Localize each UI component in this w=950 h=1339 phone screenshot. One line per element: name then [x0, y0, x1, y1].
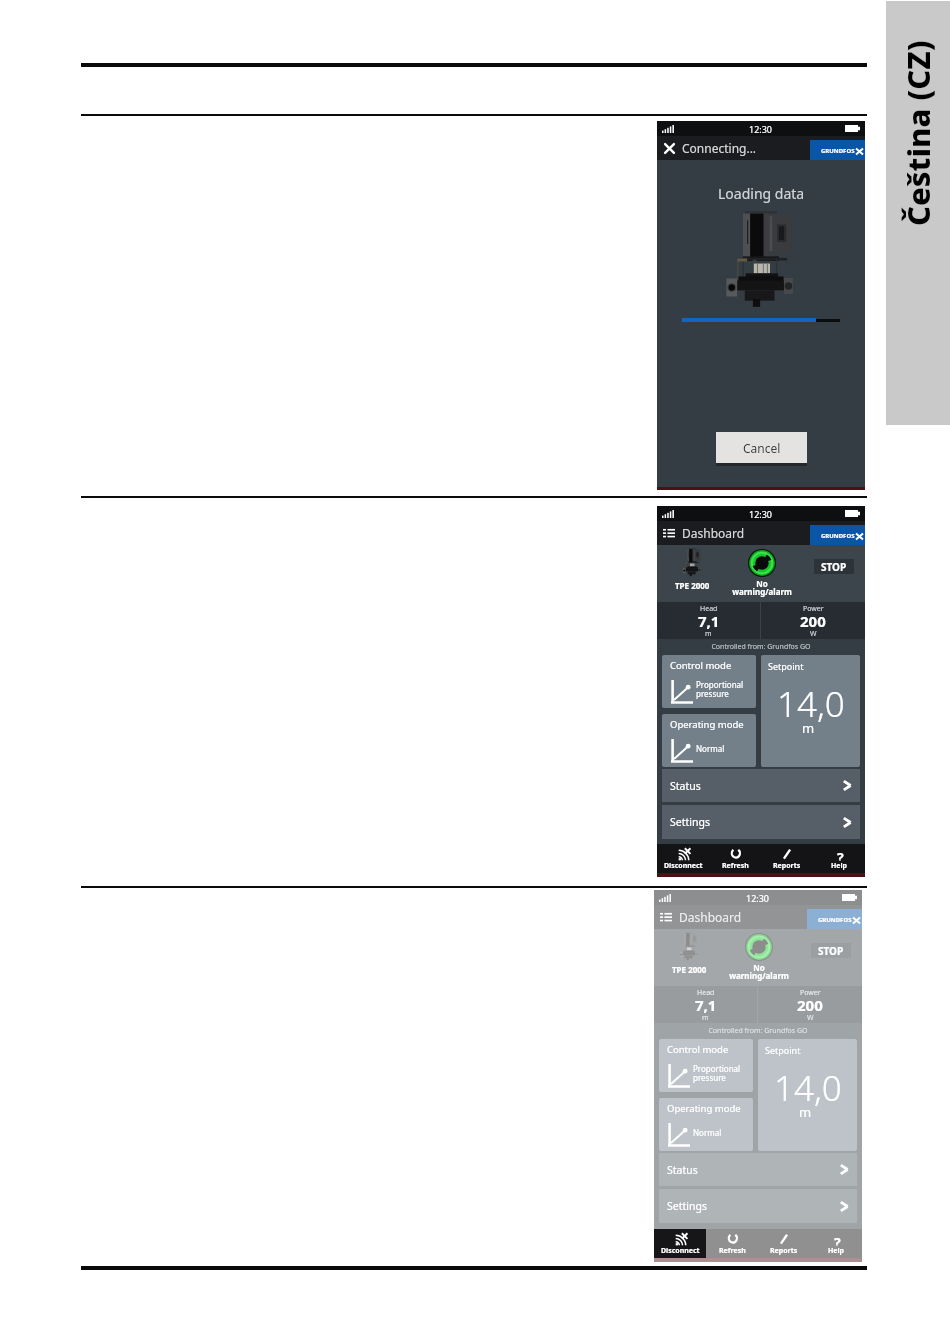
staticText: Reports [770, 1246, 798, 1256]
button[interactable]: Setpoint [758, 1039, 857, 1151]
button[interactable]: Close [657, 136, 865, 160]
staticText: Disconnect [661, 1246, 700, 1256]
button[interactable]: Menu [657, 521, 865, 545]
staticText: Refresh [719, 1246, 746, 1256]
other: Open Status [840, 1164, 848, 1175]
button[interactable]: Disconnect [654, 1229, 706, 1258]
other: Close [664, 143, 675, 154]
staticText: Connecting... [682, 140, 757, 156]
button[interactable]: Menu [654, 905, 862, 929]
staticText: Čeština (CZ) [897, 40, 939, 226]
staticText: 7,1 [695, 995, 717, 1015]
staticText: 200 [797, 995, 823, 1015]
staticText: Help [831, 861, 848, 871]
staticText: Power [800, 988, 821, 998]
staticText: Control mode [670, 659, 732, 672]
other: Menu [660, 911, 672, 923]
staticText: No warning/alarm [729, 962, 789, 981]
staticText: Status [670, 779, 701, 793]
button[interactable]: ? [810, 1229, 862, 1258]
staticText: No warning/alarm [732, 578, 792, 597]
staticText: STOP [818, 944, 844, 958]
button[interactable]: TPE 2000 [657, 545, 727, 602]
button[interactable]: Disconnect [654, 1229, 706, 1258]
staticText: 14,0 [774, 1064, 842, 1112]
staticText: Head [700, 604, 718, 614]
staticText: 14,0 [777, 680, 845, 728]
staticText: 12:30 [746, 892, 770, 904]
staticText: GRUNDFOS [821, 147, 855, 155]
button[interactable]: ? [813, 844, 865, 873]
staticText: Proportional pressure [693, 1063, 741, 1084]
staticText: Operating mode [670, 718, 744, 731]
button[interactable]: Cancel [716, 432, 807, 463]
button[interactable]: Disconnect [657, 844, 709, 873]
staticText: Reports [773, 861, 801, 871]
button[interactable]: Power [761, 602, 865, 639]
staticText: m [705, 629, 712, 639]
staticText: 7,1 [698, 611, 720, 631]
staticText: Status [667, 1163, 698, 1177]
staticText: Setpoint [768, 660, 804, 672]
button[interactable]: Control mode [659, 1039, 753, 1092]
button[interactable]: Settings [662, 805, 860, 839]
button[interactable]: Head [657, 602, 760, 639]
staticText: TPE 2000 [675, 580, 710, 591]
staticText: Settings [670, 815, 710, 829]
button[interactable]: Disconnect [654, 1229, 706, 1258]
staticText: GRUNDFOS [818, 916, 852, 924]
other: Open Settings [840, 1201, 848, 1212]
staticText: Setpoint [765, 1044, 801, 1056]
button[interactable]: Grundfos [810, 140, 865, 160]
button[interactable]: Status [659, 1153, 857, 1186]
staticText: GRUNDFOS [821, 532, 855, 540]
button[interactable]: Head [654, 986, 757, 1023]
button[interactable]: STOP [811, 943, 851, 958]
other: Status OK [745, 933, 773, 961]
other: Open Status [843, 780, 851, 791]
other: Status OK [748, 549, 776, 577]
button[interactable]: Grundfos [807, 909, 862, 929]
button[interactable]: Refresh [706, 1229, 758, 1258]
staticText: 12:30 [749, 123, 773, 135]
staticText: Disconnect [664, 861, 703, 871]
staticText: W [807, 1013, 814, 1023]
button[interactable]: Control mode [662, 655, 756, 708]
staticText: Normal [693, 1127, 722, 1138]
staticText: m [802, 719, 815, 737]
staticText: Disconnect [661, 1246, 700, 1256]
staticText: Power [803, 604, 824, 614]
staticText: 200 [800, 611, 826, 631]
button[interactable]: Reports [758, 1229, 810, 1258]
button[interactable]: Status OK [727, 545, 796, 602]
staticText: 12:30 [749, 508, 773, 520]
staticText: Controlled from: Grundfos GO [708, 1026, 808, 1036]
button[interactable]: Power [758, 986, 862, 1023]
button[interactable]: Reports [761, 844, 813, 873]
button[interactable]: Settings [659, 1189, 857, 1223]
button[interactable]: TPE 2000 [654, 929, 724, 986]
button[interactable]: Setpoint [761, 655, 860, 767]
staticText: Control mode [667, 1043, 729, 1056]
staticText: Dashboard [679, 909, 742, 925]
button[interactable]: Refresh [709, 844, 761, 873]
staticText: Normal [696, 743, 725, 754]
staticText: Refresh [722, 861, 749, 871]
button[interactable]: Status OK [724, 929, 793, 986]
other: Menu [663, 527, 675, 539]
staticText: Loading data [718, 184, 805, 203]
button[interactable]: Operating mode [659, 1098, 753, 1151]
staticText: ? [837, 848, 844, 861]
staticText: STOP [821, 560, 847, 574]
staticText: W [810, 629, 817, 639]
button[interactable]: STOP [814, 559, 854, 574]
staticText: m [702, 1013, 709, 1023]
button[interactable]: Operating mode [662, 714, 756, 767]
button[interactable]: Grundfos [810, 525, 865, 545]
other: Open Settings [843, 817, 851, 828]
staticText: Cancel [743, 440, 781, 456]
staticText: Dashboard [682, 525, 745, 541]
staticText: Proportional pressure [696, 679, 744, 700]
staticText: Operating mode [667, 1102, 741, 1115]
button[interactable]: Status [662, 769, 860, 802]
